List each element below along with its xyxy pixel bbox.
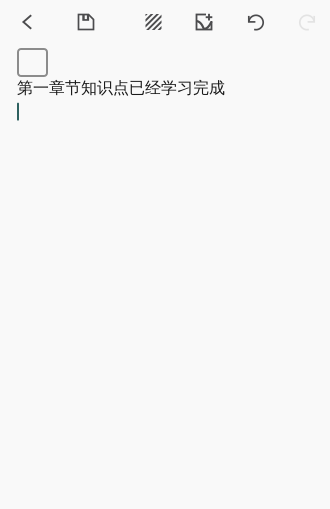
button[interactable]: Highlight bbox=[131, 0, 175, 44]
button[interactable]: Back bbox=[5, 0, 49, 44]
staticText: 第一章节知识点已经学习完成 bbox=[17, 78, 225, 98]
button[interactable]: Insert image bbox=[182, 0, 226, 44]
button[interactable]: Save bbox=[64, 0, 108, 44]
button[interactable]: Undo bbox=[234, 0, 278, 44]
button[interactable]: Redo bbox=[285, 0, 329, 44]
